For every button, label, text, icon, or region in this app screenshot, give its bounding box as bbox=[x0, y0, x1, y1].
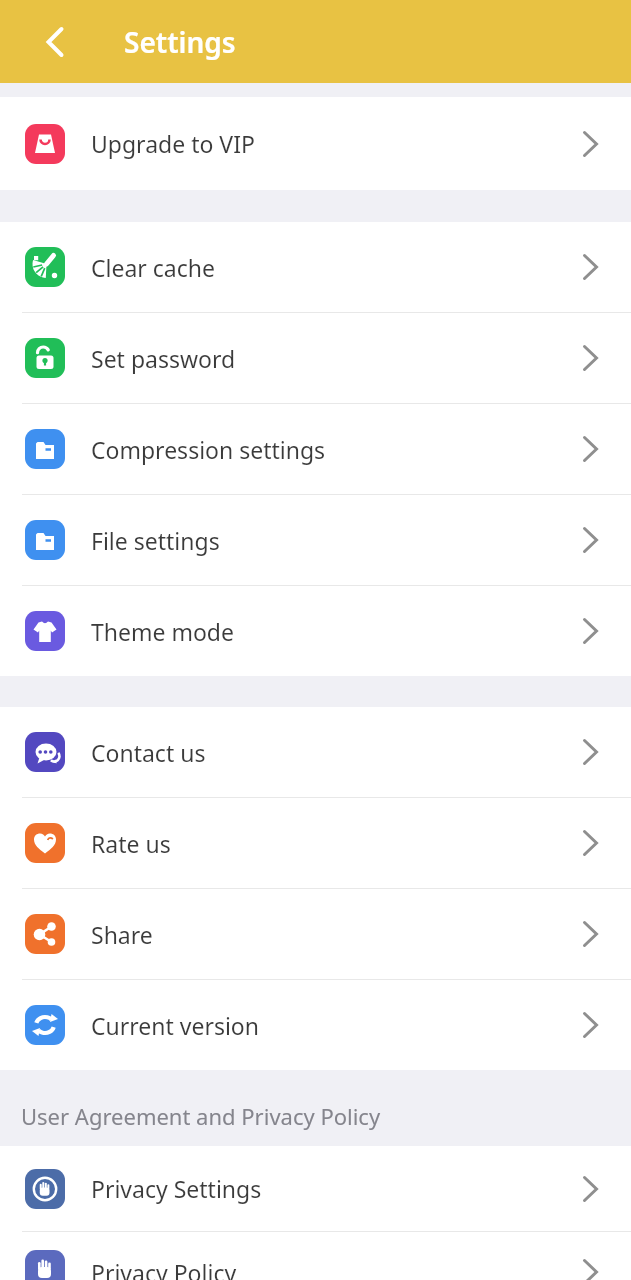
button[interactable]: Privacy Policy bbox=[0, 1232, 631, 1280]
button[interactable]: File settings bbox=[0, 495, 631, 585]
button[interactable] bbox=[36, 23, 74, 61]
staticText: Upgrade to VIP bbox=[91, 128, 255, 159]
button[interactable]: Current version bbox=[0, 980, 631, 1070]
button[interactable]: Set password bbox=[0, 313, 631, 403]
staticText: Rate us bbox=[91, 828, 171, 859]
button[interactable]: Privacy Settings bbox=[0, 1146, 631, 1231]
staticText: Contact us bbox=[91, 737, 206, 768]
button[interactable]: Clear cache bbox=[0, 222, 631, 312]
button[interactable]: Rate us bbox=[0, 798, 631, 888]
button[interactable]: Compression settings bbox=[0, 404, 631, 494]
staticText: Set password bbox=[91, 343, 236, 374]
button[interactable]: Contact us bbox=[0, 707, 631, 797]
staticText: Theme mode bbox=[91, 616, 234, 647]
button[interactable]: Upgrade to VIP bbox=[0, 97, 631, 190]
staticText: Current version bbox=[91, 1010, 259, 1041]
staticText: Clear cache bbox=[91, 252, 215, 283]
staticText: Settings bbox=[124, 23, 236, 61]
button[interactable]: Theme mode bbox=[0, 586, 631, 676]
staticText: Privacy Settings bbox=[91, 1173, 262, 1204]
staticText: Share bbox=[91, 919, 153, 950]
staticText: User Agreement and Privacy Policy bbox=[21, 1101, 381, 1131]
staticText: Privacy Policy bbox=[91, 1257, 237, 1280]
staticText: Compression settings bbox=[91, 434, 326, 465]
button[interactable]: Share bbox=[0, 889, 631, 979]
staticText: File settings bbox=[91, 525, 220, 556]
